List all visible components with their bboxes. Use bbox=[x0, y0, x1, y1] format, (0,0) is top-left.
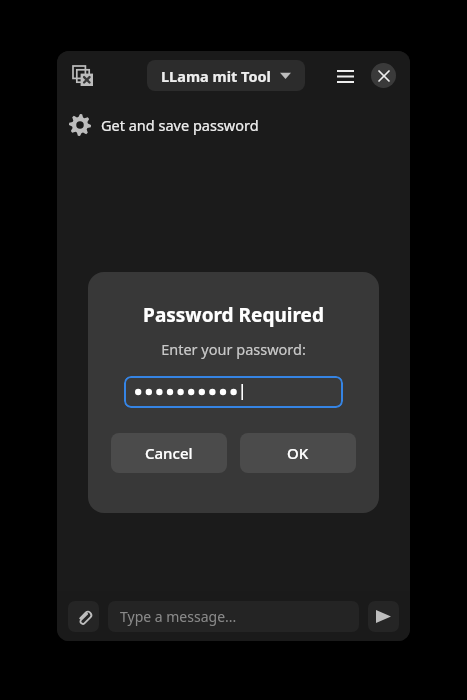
button[interactable]: Menu bbox=[329, 60, 361, 92]
button[interactable]: Password field bbox=[124, 376, 343, 408]
button[interactable]: Send bbox=[368, 601, 399, 632]
button[interactable]: Close bbox=[371, 63, 396, 88]
staticText: Type a message... bbox=[120, 607, 237, 626]
button[interactable]: Attach file bbox=[68, 601, 99, 632]
staticText: Password Required bbox=[143, 302, 324, 328]
staticText: LLama mit Tool bbox=[161, 66, 271, 86]
staticText: Enter your password: bbox=[161, 339, 306, 359]
button[interactable]: LLama mit Tool bbox=[147, 60, 305, 91]
button[interactable]: Cancel bbox=[111, 433, 227, 473]
button[interactable]: OK bbox=[240, 433, 356, 473]
button[interactable]: Type a message... bbox=[108, 601, 359, 632]
staticText: Cancel bbox=[145, 443, 193, 463]
staticText: Get and save password bbox=[101, 115, 259, 135]
button[interactable]: Close all chats bbox=[66, 59, 100, 93]
staticText: OK bbox=[287, 443, 309, 463]
